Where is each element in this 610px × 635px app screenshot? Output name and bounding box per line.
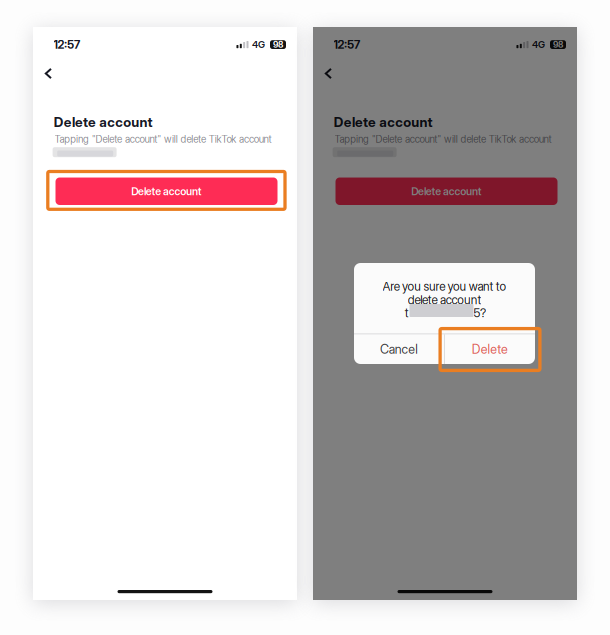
staticText: Tapping "Delete account" will delete Tik… [334,133,551,145]
button[interactable]: Delete account [55,177,277,205]
staticText: Delete account [54,114,152,130]
button[interactable]: Back [33,62,73,84]
staticText: Tapping "Delete account" will delete Tik… [54,133,271,145]
staticText: Delete account [131,185,202,198]
button[interactable]: Delete [445,334,535,364]
button[interactable]: Delete account [335,177,557,205]
staticText: Delete account [334,114,432,130]
staticText: 12:57 [333,38,360,52]
button[interactable]: Back [313,62,353,84]
staticText: delete account [408,292,481,307]
staticText: Are you sure you want to [383,279,506,293]
staticText: Delete account [411,185,482,198]
staticText: 12:57 [53,38,80,52]
staticText: t [405,306,409,320]
staticText: 98 [553,39,563,50]
staticText: 4G [532,39,545,50]
staticText: Cancel [380,342,418,357]
staticText: 4G [252,39,265,50]
staticText: 98 [273,39,283,50]
staticText: 5? [473,306,486,320]
staticText: Delete [472,342,508,357]
button[interactable]: Cancel [354,334,444,364]
